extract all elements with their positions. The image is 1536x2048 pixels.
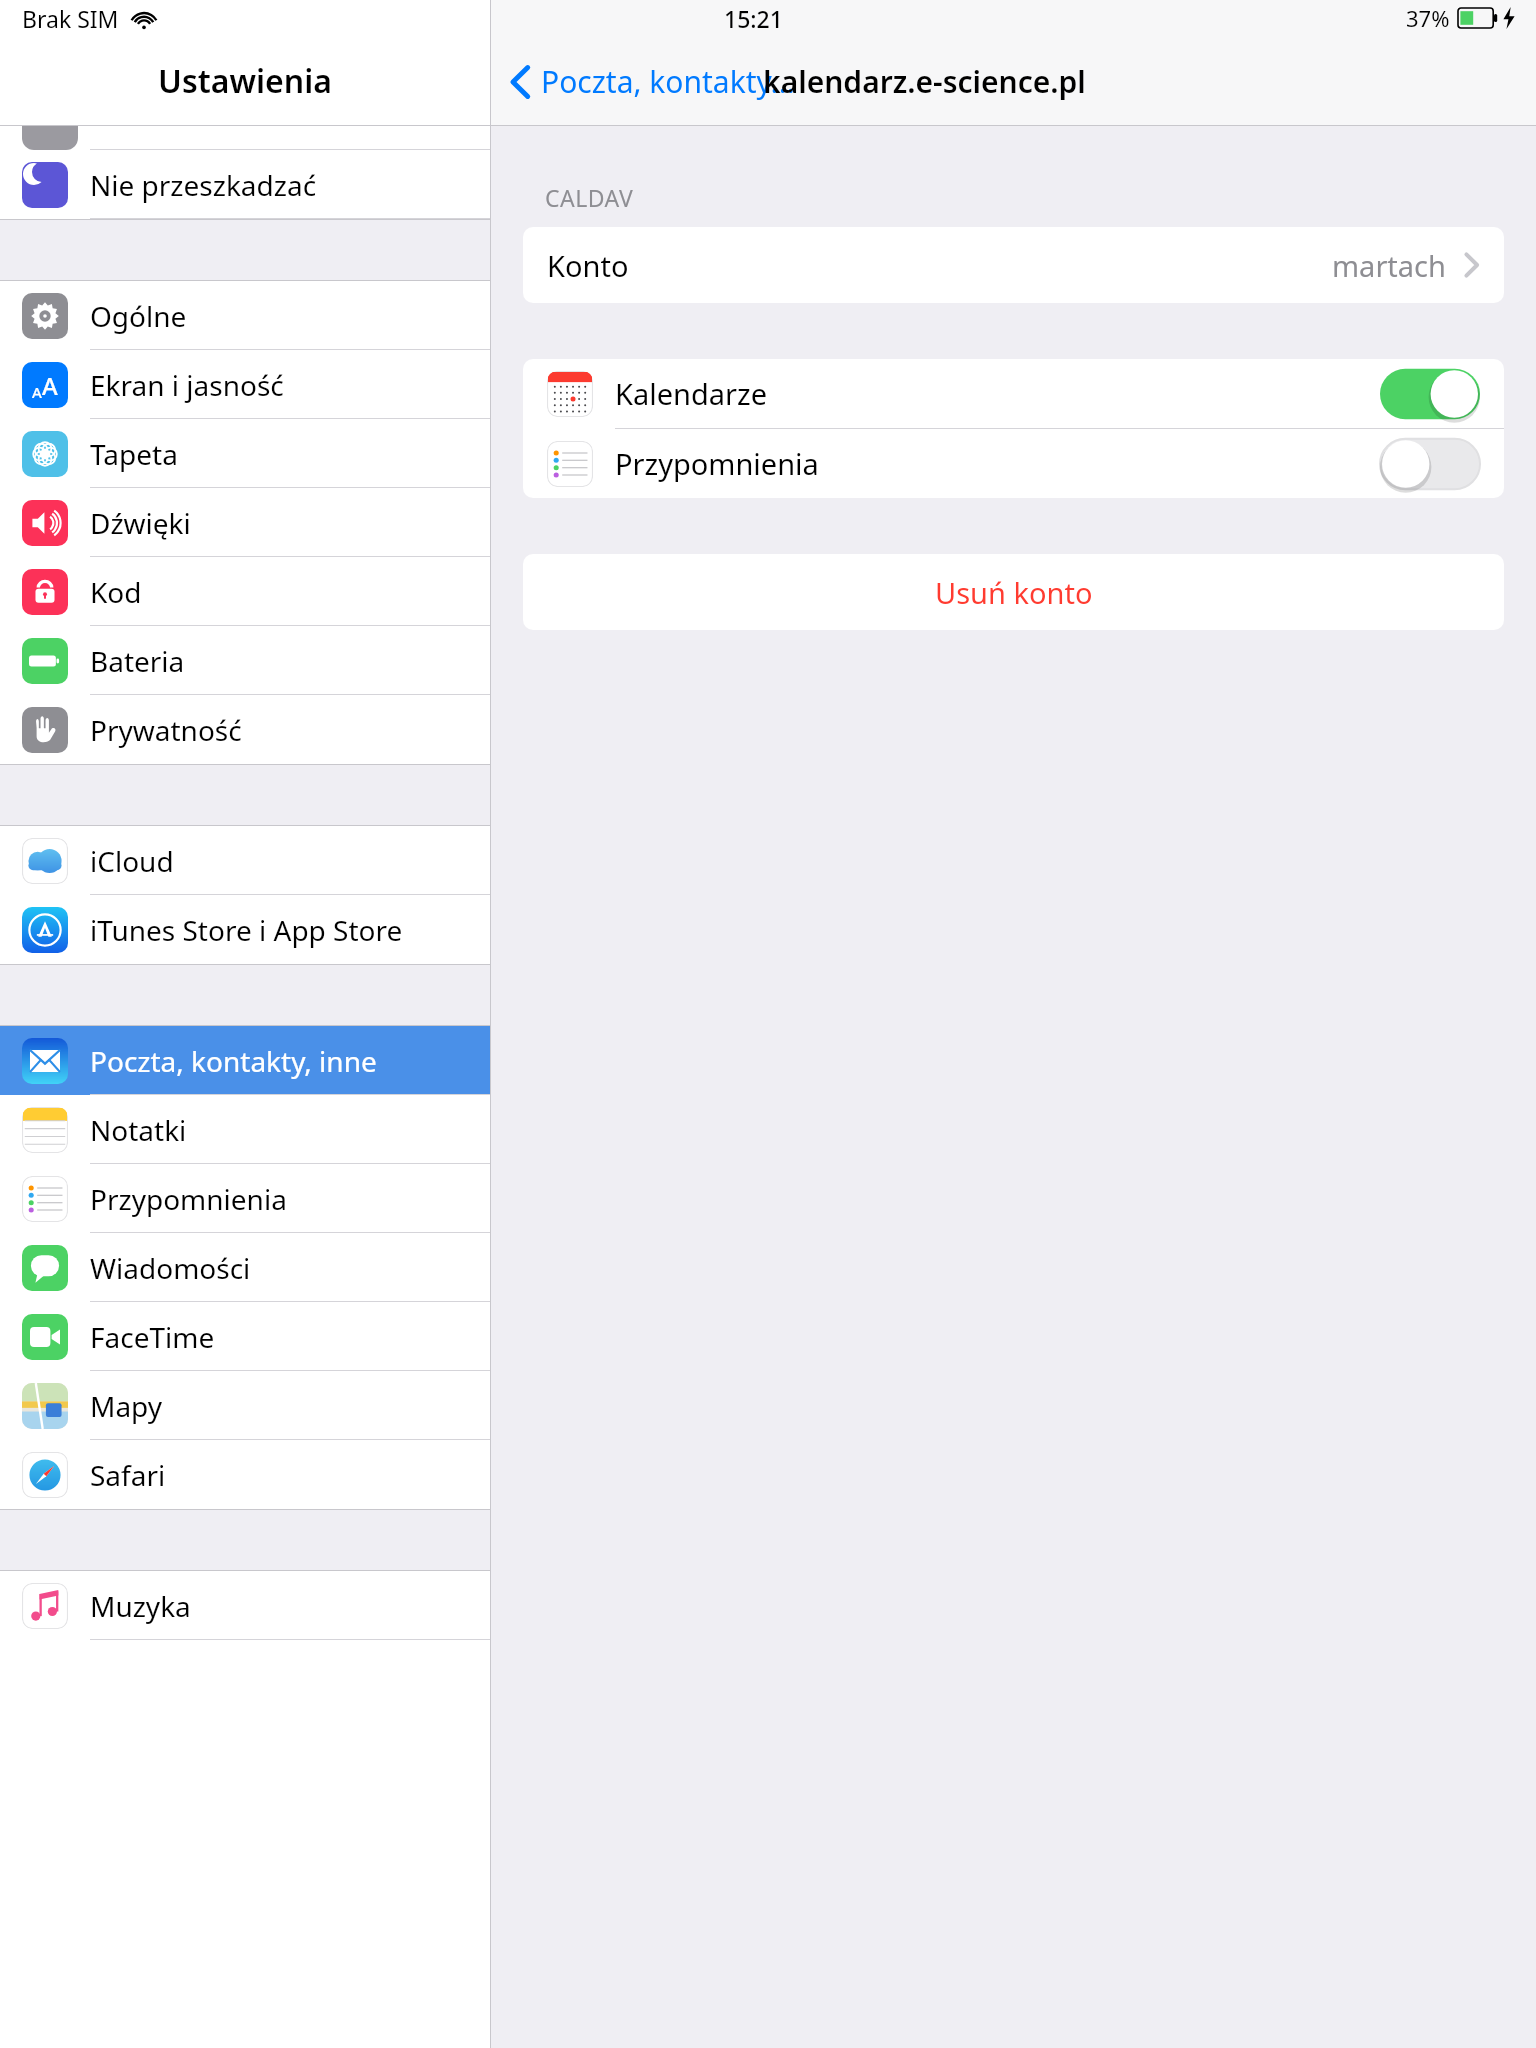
button[interactable]: Off: [1380, 434, 1480, 494]
button[interactable]: Muzyka: [0, 1571, 490, 1640]
staticText: Poczta, kontakty...: [541, 61, 795, 102]
staticText: Mapy: [90, 1387, 163, 1425]
staticText: Poczta, kontakty, inne: [90, 1042, 377, 1080]
button[interactable]: iTunes Store i App Store: [0, 895, 490, 964]
button[interactable]: Notatki: [0, 1095, 490, 1164]
button[interactable]: Kalendarze: [523, 359, 1504, 428]
button[interactable]: Back to Poczta, kontakty: [509, 61, 795, 102]
button[interactable]: Wiadomości: [0, 1233, 490, 1302]
button[interactable]: Ogólne: [0, 281, 490, 350]
staticText: Prywatność: [90, 711, 242, 749]
button[interactable]: Safari: [0, 1440, 490, 1509]
staticText: iCloud: [90, 842, 174, 880]
staticText: Dźwięki: [90, 504, 191, 542]
button[interactable]: A: [0, 350, 490, 419]
staticText: Safari: [90, 1456, 166, 1494]
staticText: A: [32, 382, 42, 402]
staticText: A: [42, 369, 58, 402]
staticText: Muzyka: [90, 1587, 191, 1625]
button[interactable]: Przypomnienia: [0, 1164, 490, 1233]
staticText: Przypomnienia: [615, 444, 819, 483]
button[interactable]: Tapeta: [0, 419, 490, 488]
button[interactable]: FaceTime: [0, 1302, 490, 1371]
staticText: Nie przeszkadzać: [90, 166, 317, 204]
button[interactable]: Poczta, kontakty, inne: [0, 1026, 490, 1095]
staticText: CALDAV: [545, 182, 634, 213]
staticText: kalendarz.e-science.pl: [763, 61, 1086, 102]
staticText: Ekran i jasność: [90, 366, 284, 404]
button[interactable]: Usuń konto: [523, 554, 1504, 630]
staticText: Brak SIM: [22, 3, 119, 34]
button[interactable]: Przypomnienia: [523, 429, 1504, 498]
staticText: iTunes Store i App Store: [90, 911, 403, 949]
staticText: Wiadomości: [90, 1249, 251, 1287]
button[interactable]: Bateria: [0, 626, 490, 695]
button[interactable]: On: [1380, 364, 1480, 424]
staticText: 15:21: [724, 3, 783, 34]
button[interactable]: Mapy: [0, 1371, 490, 1440]
staticText: Kalendarze: [615, 374, 768, 413]
button[interactable]: Prywatność: [0, 695, 490, 764]
staticText: Ustawienia: [158, 59, 332, 103]
staticText: Ogólne: [90, 297, 187, 335]
button[interactable]: Kod: [0, 557, 490, 626]
staticText: martach: [1332, 246, 1446, 285]
staticText: Tapeta: [90, 435, 178, 473]
staticText: FaceTime: [90, 1318, 215, 1356]
staticText: Bateria: [90, 642, 185, 680]
staticText: Przypomnienia: [90, 1180, 287, 1218]
button[interactable]: iCloud: [0, 826, 490, 895]
staticText: Konto: [547, 246, 629, 285]
button[interactable]: Konto: [523, 227, 1504, 303]
staticText: 37%: [1406, 3, 1450, 33]
staticText: Kod: [90, 573, 142, 611]
staticText: Usuń konto: [935, 573, 1093, 612]
button[interactable]: Dźwięki: [0, 488, 490, 557]
staticText: Notatki: [90, 1111, 187, 1149]
button[interactable]: Nie przeszkadzać: [0, 150, 490, 219]
